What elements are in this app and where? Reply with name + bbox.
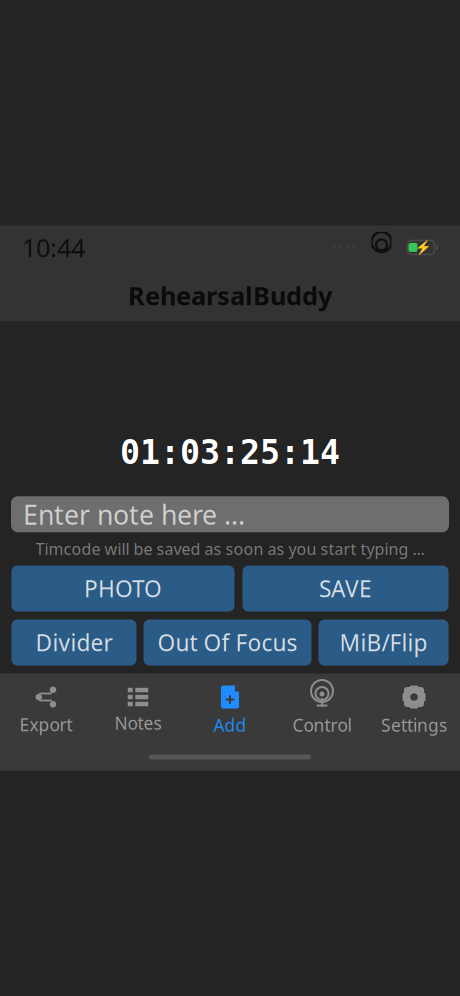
staticText: Enter note here ... (23, 497, 245, 532)
button[interactable]: RehearsalBuddy (0, 269, 460, 321)
staticText: Timcode will be saved as soon as you sta… (35, 538, 424, 559)
staticText: Settings (381, 713, 447, 736)
button[interactable]: MiB/Flip (318, 619, 448, 665)
button[interactable]: Divider (11, 619, 136, 665)
staticText: Export (19, 713, 72, 736)
staticText: 01:03:25:14 (120, 433, 340, 471)
button[interactable]: SAVE (242, 565, 448, 611)
button[interactable]: PHOTO (11, 565, 234, 611)
button[interactable]: Notes (92, 677, 184, 740)
staticText: Add (213, 713, 246, 736)
staticText: MiB/Flip (339, 627, 427, 658)
button[interactable]: Control (276, 675, 368, 742)
button[interactable]: Enter note here ... (11, 496, 449, 532)
button[interactable]: Settings (368, 675, 460, 742)
button[interactable]: Export (0, 676, 92, 742)
button[interactable]: Add (184, 675, 276, 742)
staticText: SAVE (319, 573, 372, 604)
button[interactable]: Out Of Focus (143, 619, 311, 665)
staticText: RehearsalBuddy (128, 279, 332, 312)
staticText: Divider (35, 627, 112, 658)
staticText: Control (292, 713, 351, 736)
staticText: 10:44 (22, 231, 85, 264)
staticText: ⚡ (414, 240, 431, 255)
staticText: Notes (114, 711, 161, 734)
staticText: Out Of Focus (157, 627, 297, 658)
staticText: PHOTO (84, 573, 162, 604)
